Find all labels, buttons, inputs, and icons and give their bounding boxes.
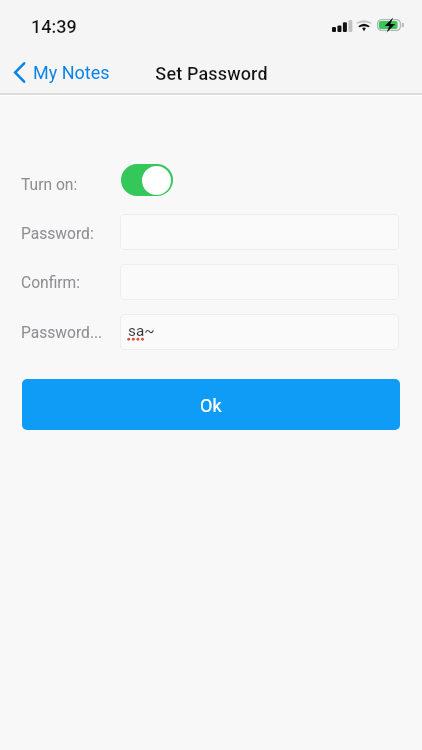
staticText: Confirm: — [21, 274, 81, 292]
staticText: Set Password — [155, 63, 268, 84]
button[interactable]: Ok — [22, 379, 400, 430]
staticText: Password: — [21, 225, 94, 243]
button[interactable]: Turn on password — [121, 164, 173, 196]
staticText: Turn on: — [21, 176, 78, 194]
staticText: sa~ — [128, 322, 155, 340]
button[interactable]: sa~ — [120, 314, 399, 350]
staticText: Ok — [200, 395, 222, 416]
button[interactable]: My Notes — [14, 62, 110, 83]
button[interactable] — [120, 214, 399, 250]
staticText: 14:39 — [31, 16, 77, 37]
staticText: Password... — [21, 324, 103, 342]
button[interactable] — [120, 264, 399, 300]
staticText: My Notes — [33, 62, 110, 83]
